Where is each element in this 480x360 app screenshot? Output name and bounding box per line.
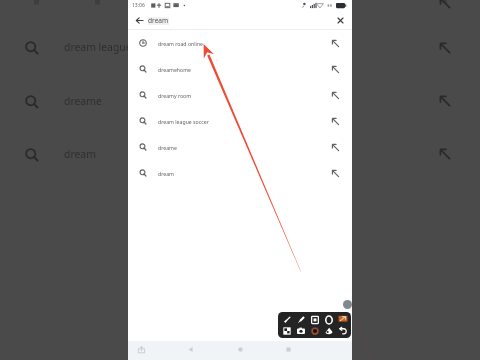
staticText: dreame bbox=[64, 94, 102, 108]
button[interactable]: Eraser bbox=[323, 325, 334, 336]
staticText: dreamehome bbox=[158, 66, 191, 73]
button[interactable]: Recent apps bbox=[281, 342, 295, 356]
button[interactable]: Circle bbox=[323, 314, 334, 325]
button[interactable]: Share bbox=[134, 342, 148, 356]
staticText: dream league soccer bbox=[158, 118, 209, 125]
staticText: dreame bbox=[158, 144, 177, 151]
button[interactable]: Move toolbar bbox=[343, 300, 352, 309]
button[interactable]: Back bbox=[134, 15, 145, 26]
staticText: dream road online bbox=[158, 40, 204, 47]
staticText: 13:06 bbox=[132, 2, 145, 9]
button[interactable]: Insert suggestion bbox=[330, 90, 340, 100]
staticText: dream bbox=[148, 16, 169, 25]
button[interactable]: Arrow bbox=[337, 314, 348, 325]
button[interactable]: Insert suggestion bbox=[330, 64, 340, 74]
button[interactable]: Camera bbox=[295, 325, 306, 336]
button[interactable]: Undo bbox=[337, 325, 348, 336]
button[interactable]: Brush bbox=[281, 314, 292, 325]
button[interactable]: Mosaic bbox=[281, 325, 292, 336]
button[interactable]: Insert suggestion bbox=[330, 38, 340, 48]
button[interactable]: dreamehome bbox=[128, 56, 352, 82]
button[interactable]: Rectangle bbox=[309, 314, 320, 325]
button[interactable]: dreamy room bbox=[128, 82, 352, 108]
button[interactable]: dream league soccer bbox=[128, 108, 352, 134]
staticText: dreamy room bbox=[158, 92, 192, 99]
staticText: dream bbox=[158, 170, 174, 177]
button[interactable]: Insert suggestion bbox=[330, 142, 340, 152]
staticText: dream league bbox=[64, 40, 132, 54]
button[interactable]: dreame bbox=[128, 134, 352, 160]
button[interactable]: Insert suggestion bbox=[330, 116, 340, 126]
button[interactable]: Color bbox=[309, 325, 320, 336]
button[interactable]: dream bbox=[128, 160, 352, 186]
button[interactable]: Clear search bbox=[335, 15, 346, 26]
staticText: dream bbox=[64, 147, 96, 161]
button[interactable]: Highlighter bbox=[295, 314, 306, 325]
button[interactable]: Insert suggestion bbox=[330, 168, 340, 178]
button[interactable]: Back bbox=[183, 342, 197, 356]
button[interactable]: dream road online bbox=[128, 30, 352, 56]
button[interactable]: Home bbox=[233, 342, 247, 356]
